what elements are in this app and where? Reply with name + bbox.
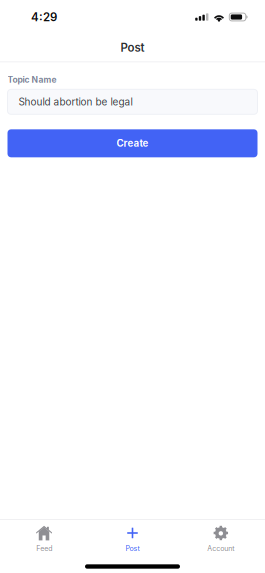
- staticText: 4:29: [31, 10, 57, 24]
- staticText: Create: [116, 137, 148, 149]
- button[interactable]: Create: [7, 129, 257, 157]
- button[interactable]: Account: [177, 523, 265, 557]
- staticText: Post: [120, 41, 144, 54]
- button[interactable]: Post: [88, 523, 177, 557]
- staticText: Post: [125, 544, 139, 553]
- staticText: Account: [207, 544, 234, 553]
- staticText: Topic Name: [7, 74, 56, 85]
- staticText: Feed: [36, 544, 52, 553]
- button[interactable]: Feed: [0, 523, 88, 557]
- staticText: Should abortion be legal: [18, 96, 132, 108]
